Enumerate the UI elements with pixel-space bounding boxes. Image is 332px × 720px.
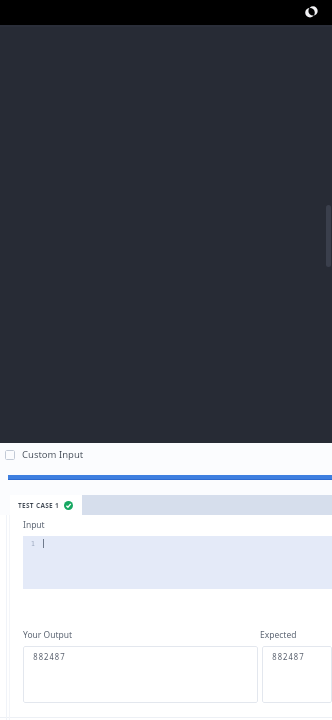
staticText: Input [23, 519, 45, 531]
button[interactable]: TEST CASE 1 [10, 495, 82, 515]
button[interactable]: 882487 [23, 646, 258, 703]
button[interactable] [8, 475, 332, 480]
staticText: Expected [260, 629, 297, 641]
staticText: TEST CASE 1 [18, 501, 60, 510]
staticText: 1 [31, 539, 35, 548]
staticText: 882487 [272, 651, 305, 662]
button[interactable]: 882487 [262, 646, 332, 703]
staticText: Custom Input [22, 448, 84, 461]
staticText: 882487 [33, 651, 66, 662]
button[interactable]: Custom Input [0, 443, 332, 466]
staticText: Your Output [23, 629, 73, 641]
button[interactable]: Dark mode [302, 5, 318, 21]
